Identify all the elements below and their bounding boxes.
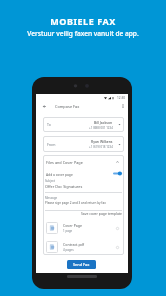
staticText: 12:30 xyxy=(117,96,126,100)
staticText: Add a cover page xyxy=(46,172,73,176)
button[interactable]: Save cover page template xyxy=(81,211,122,216)
staticText: Cover Page xyxy=(63,223,83,228)
button[interactable]: Cover Page xyxy=(46,222,119,234)
button[interactable]: To xyxy=(43,117,124,132)
staticText: Bill Jackson xyxy=(94,120,113,125)
staticText: Contract.pdf xyxy=(63,242,85,247)
staticText: Subject xyxy=(45,179,55,183)
button[interactable]: Back xyxy=(40,102,48,110)
staticText: Save cover page template xyxy=(81,211,122,216)
staticText: Please sign page 2 and 3 and return by f… xyxy=(45,201,106,205)
button[interactable]: Files and Cover Page xyxy=(43,157,124,167)
staticText: +1 (888) 001 1234 xyxy=(89,126,113,130)
staticText: 1 page xyxy=(63,229,73,233)
staticText: Files and Cover Page xyxy=(46,160,83,165)
staticText: MOBIELE FAX xyxy=(0,15,166,27)
button[interactable]: From xyxy=(43,136,124,152)
button[interactable]: Contract.pdf xyxy=(46,241,119,253)
staticText: Compose Fax xyxy=(55,104,80,109)
staticText: +1 (619) 018 1234 xyxy=(89,145,113,149)
staticText: From xyxy=(47,142,56,147)
button[interactable]: Send Fax xyxy=(67,260,96,269)
staticText: Verstuur veilig faxen vanuit de app. xyxy=(0,29,166,38)
button[interactable]: Add a cover page xyxy=(43,169,124,178)
staticText: To xyxy=(47,122,51,127)
staticText: Offer Doc Signatures xyxy=(45,184,83,189)
staticText: 4 pages xyxy=(63,248,74,252)
staticText: Ryan Wilkens xyxy=(91,139,113,144)
staticText: Message xyxy=(45,196,58,200)
button[interactable]: More options xyxy=(119,102,127,110)
staticText: Send Fax xyxy=(73,262,90,267)
